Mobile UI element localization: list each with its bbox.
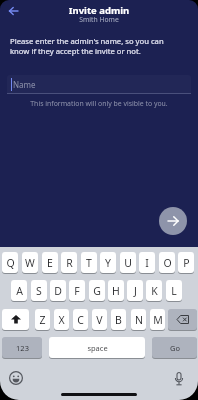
staticText: Please enter the admin's name, so you ca… (10, 36, 177, 56)
staticText: Invite admin (0, 4, 198, 17)
button[interactable]: V (92, 309, 107, 330)
staticText: R (66, 256, 73, 270)
staticText: W (25, 256, 35, 270)
staticText: Smith Home (0, 15, 198, 24)
button[interactable]: S (31, 280, 47, 301)
button[interactable]: C (73, 309, 88, 330)
staticText: Z (39, 313, 46, 327)
staticText: Name (13, 79, 36, 90)
staticText: N (135, 313, 143, 327)
staticText: X (58, 313, 65, 327)
button[interactable] (168, 309, 197, 330)
staticText: H (112, 284, 120, 298)
button[interactable]: G (89, 280, 105, 301)
staticText: Q (6, 256, 15, 270)
button[interactable]: M (150, 309, 165, 330)
button[interactable]: K (146, 280, 162, 301)
button[interactable]: H (108, 280, 124, 301)
button[interactable] (4, 3, 22, 19)
staticText: V (96, 313, 103, 327)
staticText: O (163, 256, 172, 270)
staticText: C (77, 313, 84, 327)
staticText: G (93, 284, 101, 298)
button[interactable]: A (11, 280, 27, 301)
button[interactable]: Q (2, 252, 18, 273)
button[interactable]: 123 (2, 337, 42, 358)
button[interactable]: Go (152, 337, 197, 358)
button[interactable]: Z (35, 309, 50, 330)
button[interactable] (2, 309, 29, 330)
button[interactable]: P (178, 252, 194, 273)
staticText: U (124, 256, 132, 270)
button[interactable] (169, 370, 189, 390)
button[interactable]: O (159, 252, 175, 273)
staticText: F (74, 284, 80, 298)
staticText: K (151, 284, 158, 298)
staticText: P (183, 256, 190, 270)
staticText: This information will only be visible to… (0, 99, 198, 108)
button[interactable]: E (42, 252, 58, 273)
staticText: I (145, 256, 149, 270)
button[interactable]: J (127, 280, 143, 301)
staticText: A (16, 284, 23, 298)
staticText: space (87, 343, 108, 353)
button[interactable]: R (61, 252, 77, 273)
button[interactable]: T (81, 252, 97, 273)
button[interactable]: Y (100, 252, 116, 273)
button[interactable] (6, 368, 26, 388)
button[interactable]: D (50, 280, 66, 301)
staticText: Go (170, 343, 180, 353)
staticText: M (153, 313, 163, 327)
staticText: 123 (16, 343, 29, 353)
button[interactable]: U (120, 252, 136, 273)
button[interactable]: B (111, 309, 126, 330)
staticText: S (36, 284, 42, 298)
button[interactable]: F (69, 280, 85, 301)
staticText: D (54, 284, 62, 298)
button[interactable] (159, 207, 187, 235)
staticText: L (171, 284, 177, 298)
staticText: B (115, 313, 122, 327)
button[interactable]: L (166, 280, 182, 301)
staticText: J (134, 284, 137, 298)
staticText: T (86, 256, 92, 270)
button[interactable]: space (49, 337, 145, 358)
button[interactable]: I (139, 252, 155, 273)
button[interactable]: W (22, 252, 38, 273)
button[interactable]: X (54, 309, 69, 330)
button[interactable]: N (131, 309, 146, 330)
button[interactable]: Name (7, 75, 191, 94)
staticText: E (47, 256, 53, 270)
staticText: Y (105, 256, 111, 270)
